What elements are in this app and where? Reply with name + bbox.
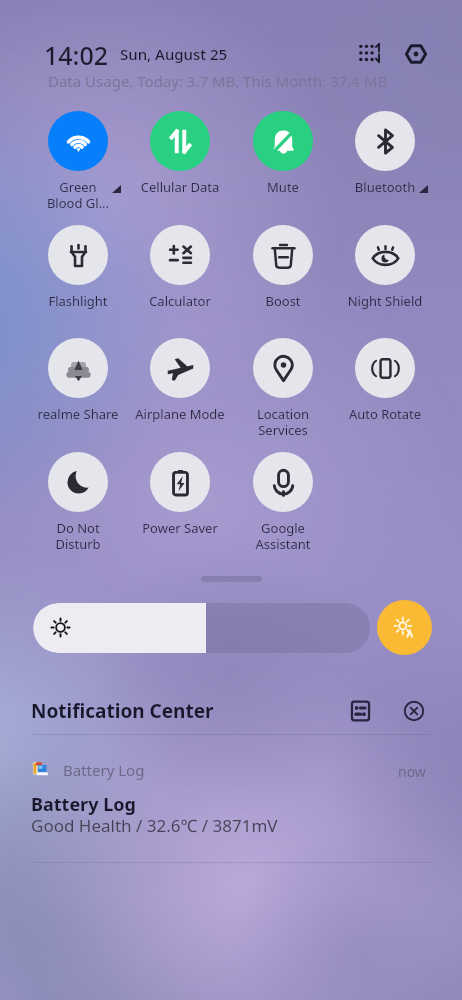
staticText: Cellular Data [129,178,231,196]
button[interactable]: Brightness [33,603,370,653]
button[interactable]: Google Assistant [232,452,334,552]
button[interactable]: Auto Rotate [334,338,436,423]
staticText: Green Blood Gl... [27,178,129,211]
button[interactable]: Airplane Mode [129,338,231,423]
staticText: Notification Center [31,698,214,724]
staticText: Google Assistant [232,519,334,552]
staticText: Flashlight [27,292,129,310]
button[interactable]: Auto brightness [377,600,432,655]
button[interactable]: Cellular Data [129,111,231,196]
staticText: Night Shield [334,292,436,310]
button[interactable]: Settings [399,37,432,70]
staticText: Auto Rotate [334,405,436,423]
button[interactable]: Boost [232,225,334,310]
button[interactable]: Do Not Disturb [27,452,129,552]
button[interactable]: Night Shield [334,225,436,310]
staticText: Airplane Mode [129,405,231,423]
button[interactable]: Flashlight [27,225,129,310]
button[interactable]: Green Blood Gl... [27,111,129,211]
button[interactable]: Calculator [129,225,231,310]
staticText: Battery Log [63,760,145,780]
staticText: Mute [232,178,334,196]
staticText: Bluetooth [334,178,436,196]
button[interactable]: Notification settings [345,696,375,726]
staticText: realme Share [27,405,129,423]
button[interactable]: Location Services [232,338,334,438]
staticText: Battery Log [31,792,136,817]
button[interactable]: Bluetooth [334,111,436,196]
staticText: Location Services [232,405,334,438]
button[interactable]: Edit tiles [354,37,386,69]
button[interactable]: realme Share [27,338,129,423]
staticText: Do Not Disturb [27,519,129,552]
button[interactable]: Clear all notifications [398,695,430,727]
button[interactable]: Mute [232,111,334,196]
staticText: Calculator [129,292,231,310]
staticText: Data Usage, Today: 3.7 MB, This Month: 3… [48,71,388,91]
staticText: 14:02 [44,38,109,72]
button[interactable]: Power Saver [129,452,231,537]
staticText: Boost [232,292,334,310]
staticText: now [398,762,426,781]
staticText: Power Saver [129,519,231,537]
staticText: Good Health / 32.6℃ / 3871mV [31,814,278,837]
staticText: Sun, August 25 [120,44,228,64]
